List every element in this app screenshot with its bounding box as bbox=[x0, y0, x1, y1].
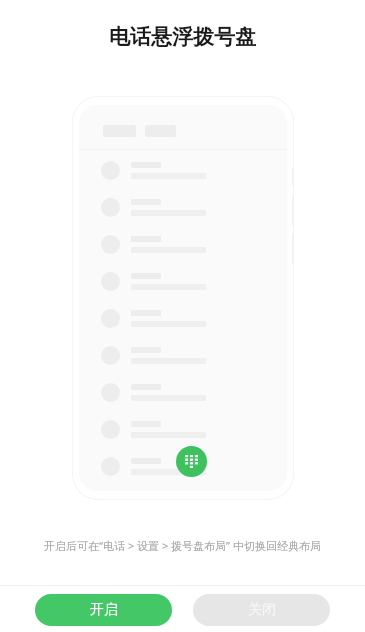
staticText: 开启 bbox=[90, 601, 118, 619]
button[interactable]: 打开拨号盘 bbox=[176, 446, 207, 477]
staticText: 关闭 bbox=[248, 601, 276, 619]
staticText: 电话悬浮拨号盘 bbox=[109, 24, 256, 50]
staticText: 开启后可在“电话 > 设置 > 拨号盘布局” 中切换回经典布局 bbox=[44, 538, 321, 553]
button[interactable]: 开启 bbox=[35, 594, 172, 626]
button[interactable]: 关闭 bbox=[193, 594, 330, 626]
